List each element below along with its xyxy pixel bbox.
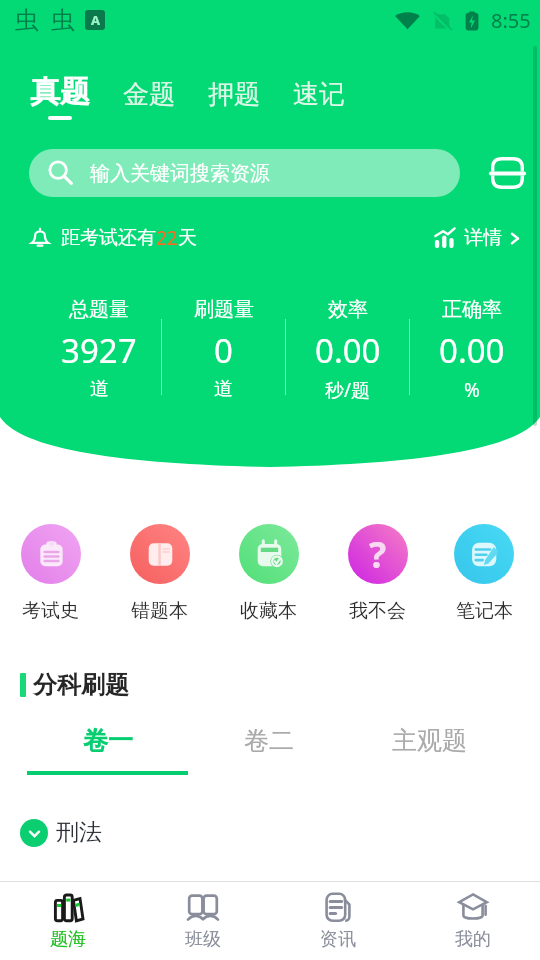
staticText: 道 bbox=[90, 377, 109, 401]
staticText: 错题本 bbox=[131, 599, 188, 623]
staticText: 详情 bbox=[464, 226, 502, 250]
button[interactable]: 笔记本 bbox=[432, 524, 536, 623]
button[interactable]: 收藏本 bbox=[214, 524, 323, 623]
staticText: 资讯 bbox=[320, 928, 356, 950]
staticText: 卷二 bbox=[244, 725, 294, 756]
staticText: 0.00 bbox=[315, 328, 381, 373]
staticText: % bbox=[464, 377, 480, 403]
staticText: 刑法 bbox=[56, 818, 102, 847]
button[interactable]: 主观题 bbox=[349, 725, 510, 771]
button[interactable]: 卷一 bbox=[27, 725, 188, 775]
staticText: 金题 bbox=[123, 78, 175, 111]
staticText: 天 bbox=[178, 226, 197, 250]
staticText: 效率 bbox=[328, 297, 368, 322]
staticText: 真题 bbox=[30, 73, 90, 111]
button[interactable]: 考试史 bbox=[0, 524, 105, 623]
staticText: 押题 bbox=[208, 78, 260, 111]
button[interactable]: ? bbox=[323, 524, 432, 623]
staticText: 输入关键词搜索资源 bbox=[90, 161, 270, 186]
staticText: 卷一 bbox=[83, 725, 133, 756]
staticText: 刷题量 bbox=[194, 297, 254, 322]
staticText: 我的 bbox=[455, 928, 491, 950]
button[interactable]: 详情 bbox=[433, 226, 522, 250]
staticText: 班级 bbox=[185, 928, 221, 950]
staticText: 8:55 bbox=[491, 7, 531, 34]
staticText: 22 bbox=[156, 225, 178, 251]
staticText: 虫 bbox=[51, 5, 75, 35]
button[interactable]: 输入关键词搜索资源 bbox=[29, 149, 460, 197]
button[interactable]: 押题 bbox=[196, 73, 272, 111]
staticText: 秒/题 bbox=[325, 377, 371, 403]
button[interactable]: 速记 bbox=[281, 73, 357, 111]
button[interactable]: Scan bbox=[488, 154, 526, 192]
button[interactable]: 错题本 bbox=[105, 524, 214, 623]
button[interactable]: 刑法 bbox=[0, 818, 540, 847]
button[interactable]: 题海 bbox=[0, 882, 135, 960]
button[interactable]: 卷二 bbox=[188, 725, 349, 771]
staticText: 我不会 bbox=[349, 599, 406, 623]
staticText: 道 bbox=[214, 377, 233, 401]
staticText: 0.00 bbox=[439, 328, 505, 373]
staticText: 分科刷题 bbox=[33, 670, 129, 700]
staticText: 3927 bbox=[61, 328, 137, 373]
button[interactable]: 我的 bbox=[405, 882, 540, 960]
staticText: A bbox=[91, 11, 100, 29]
staticText: 总题量 bbox=[69, 297, 129, 322]
staticText: 正确率 bbox=[442, 297, 502, 322]
staticText: 题海 bbox=[50, 928, 86, 950]
button[interactable]: 班级 bbox=[135, 882, 270, 960]
staticText: 考试史 bbox=[22, 599, 79, 623]
staticText: 速记 bbox=[293, 78, 345, 111]
staticText: 虫 bbox=[15, 5, 39, 35]
button[interactable]: 金题 bbox=[111, 73, 187, 111]
staticText: ? bbox=[369, 530, 387, 579]
staticText: 笔记本 bbox=[456, 599, 513, 623]
staticText: 收藏本 bbox=[240, 599, 297, 623]
button[interactable]: 真题 bbox=[30, 73, 90, 120]
staticText: 距考试还有 bbox=[61, 226, 156, 250]
staticText: 0 bbox=[214, 328, 233, 373]
button[interactable]: 资讯 bbox=[270, 882, 405, 960]
staticText: 主观题 bbox=[392, 725, 467, 756]
